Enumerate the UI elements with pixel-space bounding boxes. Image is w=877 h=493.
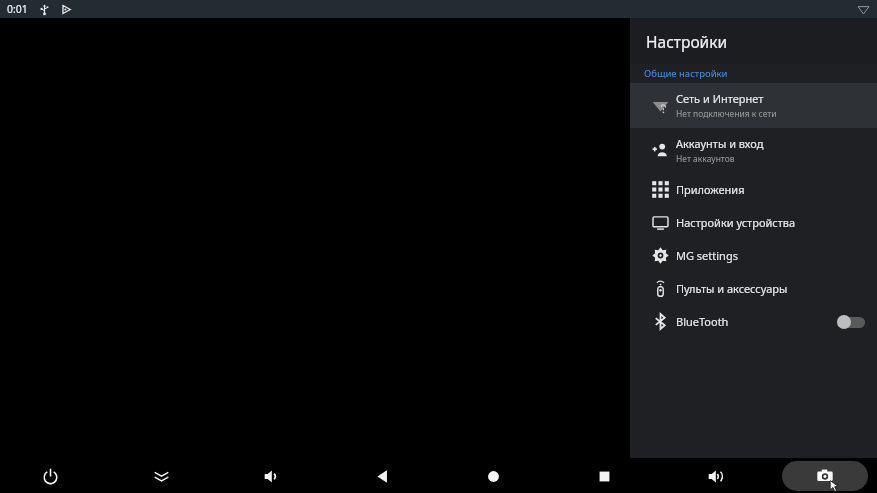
button[interactable]: Сеть и Интернет <box>630 83 877 128</box>
button[interactable]: Volume up <box>699 459 733 493</box>
staticText: Настройки <box>646 31 728 52</box>
button[interactable]: Приложения <box>630 173 877 206</box>
staticText: Нет подключения к сети <box>676 108 777 120</box>
staticText: MG settings <box>676 248 738 263</box>
button[interactable]: Bluetooth toggle <box>837 314 865 330</box>
button[interactable]: Collapse <box>144 459 178 493</box>
staticText: Сеть и Интернет <box>676 91 764 106</box>
staticText: BlueTooth <box>676 314 729 329</box>
button[interactable]: Home <box>476 459 510 493</box>
button[interactable]: MG settings <box>630 239 877 272</box>
staticText: 0:01 <box>7 2 28 16</box>
button[interactable]: Back <box>365 459 399 493</box>
button[interactable]: Power <box>33 459 67 493</box>
staticText: Аккаунты и вход <box>676 136 764 151</box>
button[interactable]: Volume down <box>255 459 289 493</box>
staticText: Общие настройки <box>644 67 728 80</box>
staticText: Пульты и аксессуары <box>676 281 788 296</box>
button[interactable]: Screenshot <box>782 461 868 491</box>
button[interactable]: BlueTooth <box>630 305 877 338</box>
button[interactable]: Аккаунты и вход <box>630 128 877 173</box>
staticText: Настройки устройства <box>676 215 796 230</box>
button[interactable]: Пульты и аксессуары <box>630 272 877 305</box>
button[interactable]: Настройки устройства <box>630 206 877 239</box>
button[interactable]: Recents <box>587 459 621 493</box>
staticText: Приложения <box>676 182 745 197</box>
staticText: Нет аккаунтов <box>676 153 735 165</box>
